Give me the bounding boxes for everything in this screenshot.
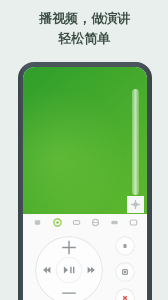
button[interactable]: Pointer (86, 214, 105, 230)
button[interactable]: Laser (47, 214, 67, 230)
button[interactable]: Fullscreen (23, 67, 147, 214)
button[interactable]: Slides (67, 214, 86, 230)
button[interactable]: More (124, 214, 143, 230)
button[interactable]: Stop (115, 262, 135, 282)
button[interactable]: Close (115, 288, 135, 300)
button[interactable]: Keyboard (105, 214, 124, 230)
button[interactable] (35, 236, 103, 300)
button[interactable]: Fullscreen (127, 196, 144, 213)
button[interactable]: Screen (27, 214, 47, 230)
button[interactable]: Volume (115, 236, 135, 256)
staticText: 播视频，做演讲 (39, 10, 130, 26)
staticText: 轻松简单 (58, 30, 110, 46)
